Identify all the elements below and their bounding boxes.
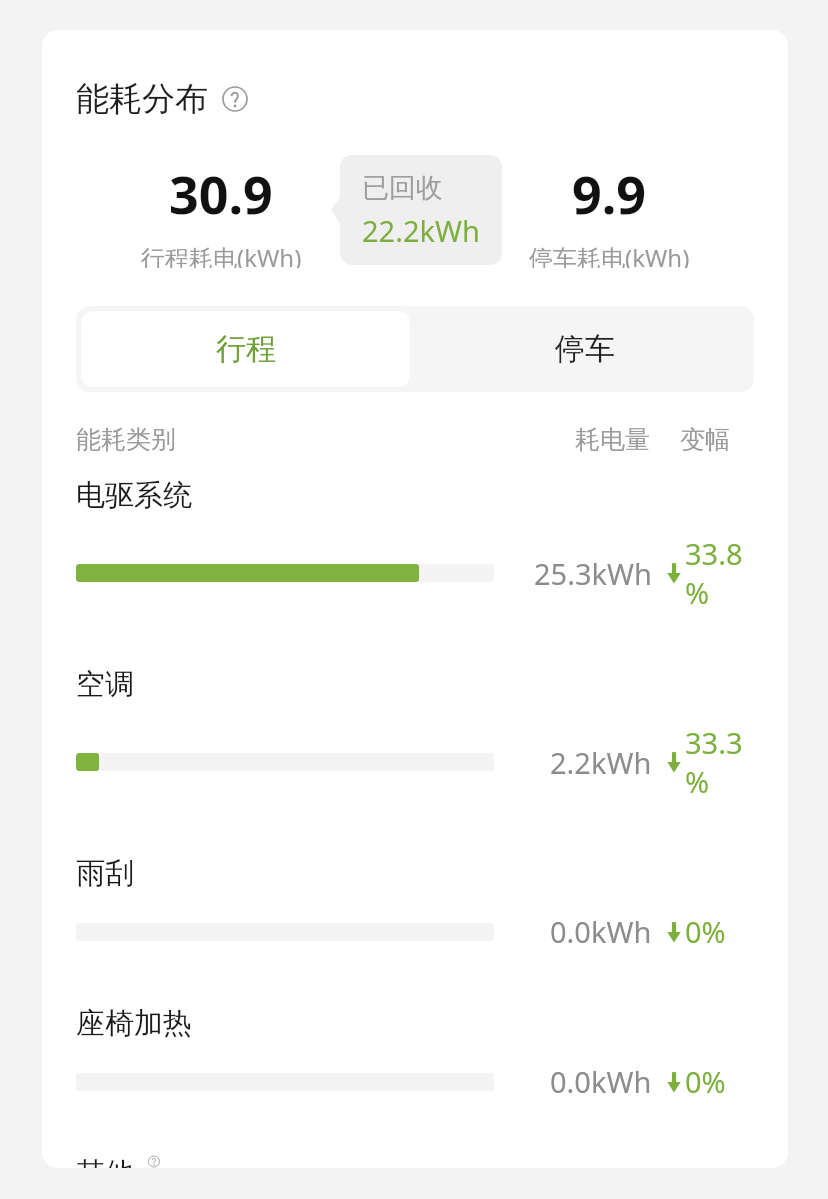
staticText: 其他 — [76, 1155, 134, 1168]
staticText: 9.9 — [572, 158, 647, 229]
staticText: 座椅加热 — [76, 1005, 192, 1042]
staticText: 耗电量 — [575, 424, 650, 455]
staticText: 33.3% — [685, 723, 754, 801]
button[interactable]: 已回收 — [340, 155, 502, 265]
button[interactable]: 其他 — [42, 1155, 788, 1168]
staticText: 0.0kWh — [550, 912, 652, 951]
staticText: 30.9 — [169, 158, 273, 229]
staticText: 0% — [685, 1062, 726, 1101]
staticText: 电驱系统 — [76, 477, 192, 514]
button[interactable]: 行程 — [81, 311, 410, 387]
staticText: 0.0kWh — [550, 1062, 652, 1101]
staticText: 停车 — [555, 330, 615, 368]
staticText: 33.8% — [685, 534, 754, 612]
staticText: 能耗类别 — [76, 424, 176, 455]
staticText: 22.2kWh — [362, 211, 480, 249]
button[interactable]: 座椅加热 — [42, 1005, 788, 1155]
staticText: 变幅 — [680, 424, 730, 455]
staticText: 行程耗电(kWh) — [141, 241, 302, 268]
button[interactable]: 电驱系统 — [42, 477, 788, 666]
staticText: 能耗分布 — [76, 78, 208, 120]
staticText: 0% — [685, 912, 726, 951]
staticText: 停车耗电(kWh) — [529, 241, 690, 268]
staticText: 2.2kWh — [550, 743, 652, 782]
button[interactable]: 停车 — [415, 306, 754, 392]
staticText: 25.3kWh — [534, 554, 652, 593]
button[interactable]: 雨刮 — [42, 855, 788, 1005]
staticText: 已回收 — [362, 171, 443, 205]
button[interactable]: 帮助说明 — [222, 86, 248, 112]
staticText: 空调 — [76, 666, 134, 703]
staticText: 雨刮 — [76, 855, 134, 892]
staticText: 行程 — [216, 330, 276, 368]
button[interactable]: 空调 — [42, 666, 788, 855]
